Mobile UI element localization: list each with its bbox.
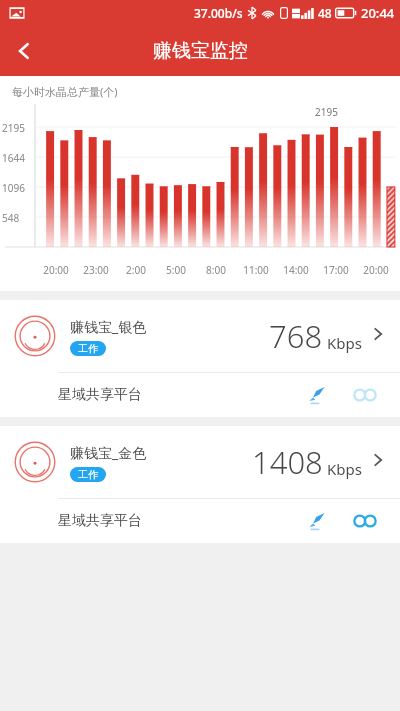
staticText: 768 <box>269 315 323 357</box>
staticText: 548 <box>2 211 20 225</box>
staticText: 37.00b/s <box>194 5 243 21</box>
staticText: Kbps <box>327 459 362 479</box>
button[interactable]: 星域共享平台 <box>0 373 400 417</box>
staticText: 工作 <box>78 468 98 481</box>
staticText: 2:00 <box>126 263 146 277</box>
staticText: 17:00 <box>323 263 349 277</box>
button[interactable]: 赚钱宝_银色 <box>0 300 400 372</box>
staticText: 1096 <box>2 181 25 195</box>
staticText: 20:00 <box>363 263 389 277</box>
staticText: 5:00 <box>166 263 186 277</box>
staticText: 赚钱宝_银色 <box>70 317 147 336</box>
staticText: 1644 <box>2 151 25 165</box>
staticText: 工作 <box>78 342 98 355</box>
staticText: 赚钱宝_金色 <box>70 443 147 462</box>
staticText: 赚钱宝监控 <box>153 39 248 63</box>
staticText: 2195 <box>2 121 25 135</box>
button[interactable]: 星域共享平台 <box>0 499 400 543</box>
staticText: 20:44 <box>361 4 395 22</box>
staticText: 1408 <box>252 441 323 483</box>
button[interactable]: Unlimited <box>350 380 380 410</box>
button[interactable]: Back <box>0 27 48 75</box>
button[interactable]: Unlimited <box>350 506 380 536</box>
staticText: 2195 <box>315 105 338 119</box>
staticText: Kbps <box>327 333 362 353</box>
staticText: 48 <box>318 5 332 21</box>
staticText: 星域共享平台 <box>58 386 142 404</box>
staticText: 23:00 <box>83 263 109 277</box>
staticText: 14:00 <box>283 263 309 277</box>
staticText: 星域共享平台 <box>58 512 142 530</box>
staticText: 20:00 <box>43 263 69 277</box>
staticText: 8:00 <box>206 263 226 277</box>
staticText: 每小时水晶总产量(个) <box>12 84 118 99</box>
button[interactable]: 赚钱宝_金色 <box>0 426 400 498</box>
button[interactable]: Boost <box>302 506 332 536</box>
button[interactable]: Boost <box>302 380 332 410</box>
staticText: 11:00 <box>243 263 269 277</box>
